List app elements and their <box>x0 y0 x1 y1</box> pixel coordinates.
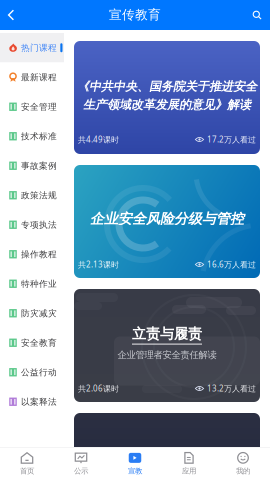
staticText: 13.2万人看过 <box>207 383 256 394</box>
button[interactable]: 以案释法 <box>0 387 64 416</box>
button[interactable]: 热门课程 <box>0 33 64 62</box>
staticText: 16.6万人看过 <box>207 259 256 270</box>
staticText: 特种作业 <box>21 278 57 289</box>
staticText: 热门课程 <box>21 42 57 53</box>
staticText: 以案释法 <box>21 396 57 407</box>
button[interactable]: 我的 <box>216 447 270 480</box>
button[interactable]: 防灾减灾 <box>0 298 64 328</box>
button[interactable]: 事故案例 <box>0 151 64 180</box>
button[interactable]: 公益行动 <box>0 357 64 387</box>
staticText: 应用 <box>182 466 196 476</box>
staticText: 最新课程 <box>21 72 57 83</box>
button[interactable]: 安全管理 <box>0 92 64 121</box>
button[interactable]: 政策法规 <box>0 180 64 210</box>
staticText: 技术标准 <box>21 131 57 142</box>
button[interactable]: 操作教程 <box>0 239 64 269</box>
staticText: 《中共中央、国务院关于推进安全 <box>77 79 257 94</box>
button[interactable]: 特种作业 <box>0 269 64 298</box>
button[interactable]: 企业安全风险分级与管控 <box>74 165 260 278</box>
staticText: 我的 <box>236 466 250 476</box>
staticText: 宣教 <box>128 466 142 476</box>
button[interactable]: 最新课程 <box>0 62 64 92</box>
staticText: 专项执法 <box>21 219 57 230</box>
staticText: 17.2万人看过 <box>207 134 256 145</box>
button[interactable]: 技术标准 <box>0 121 64 151</box>
button[interactable]: Search <box>244 0 270 30</box>
staticText: 防灾减灾 <box>21 308 57 319</box>
button[interactable]: 安全教育 <box>0 328 64 357</box>
button[interactable]: 应用 <box>162 447 216 480</box>
button[interactable]: 首页 <box>0 447 54 480</box>
button[interactable]: 公示 <box>54 447 108 480</box>
staticText: 安全教育 <box>21 337 57 348</box>
staticText: 事故案例 <box>21 160 57 171</box>
button[interactable]: 《中共中央、国务院关于推进安全 <box>74 41 260 154</box>
staticText: 共2.13课时 <box>78 259 119 270</box>
staticText: 企业安全风险分级与管控 <box>90 210 244 228</box>
button[interactable]: 立责与履责 <box>74 289 260 402</box>
staticText: 立责与履责 <box>132 325 202 343</box>
button[interactable]: 专项执法 <box>0 210 64 239</box>
button[interactable]: 宣教 <box>108 447 162 480</box>
staticText: 企业管理者安全责任解读 <box>117 349 216 361</box>
button[interactable]: Back <box>0 0 22 30</box>
staticText: 公示 <box>74 466 88 476</box>
staticText: 宣传教育 <box>109 7 161 23</box>
staticText: 安全管理 <box>21 101 57 112</box>
staticText: 生产领域改革发展的意见》解读 <box>83 97 251 112</box>
staticText: 政策法规 <box>21 190 57 201</box>
staticText: 共2.06课时 <box>78 383 119 394</box>
staticText: 首页 <box>20 466 34 476</box>
staticText: 共4.49课时 <box>78 134 119 145</box>
staticText: 公益行动 <box>21 367 57 378</box>
staticText: 操作教程 <box>21 249 57 260</box>
